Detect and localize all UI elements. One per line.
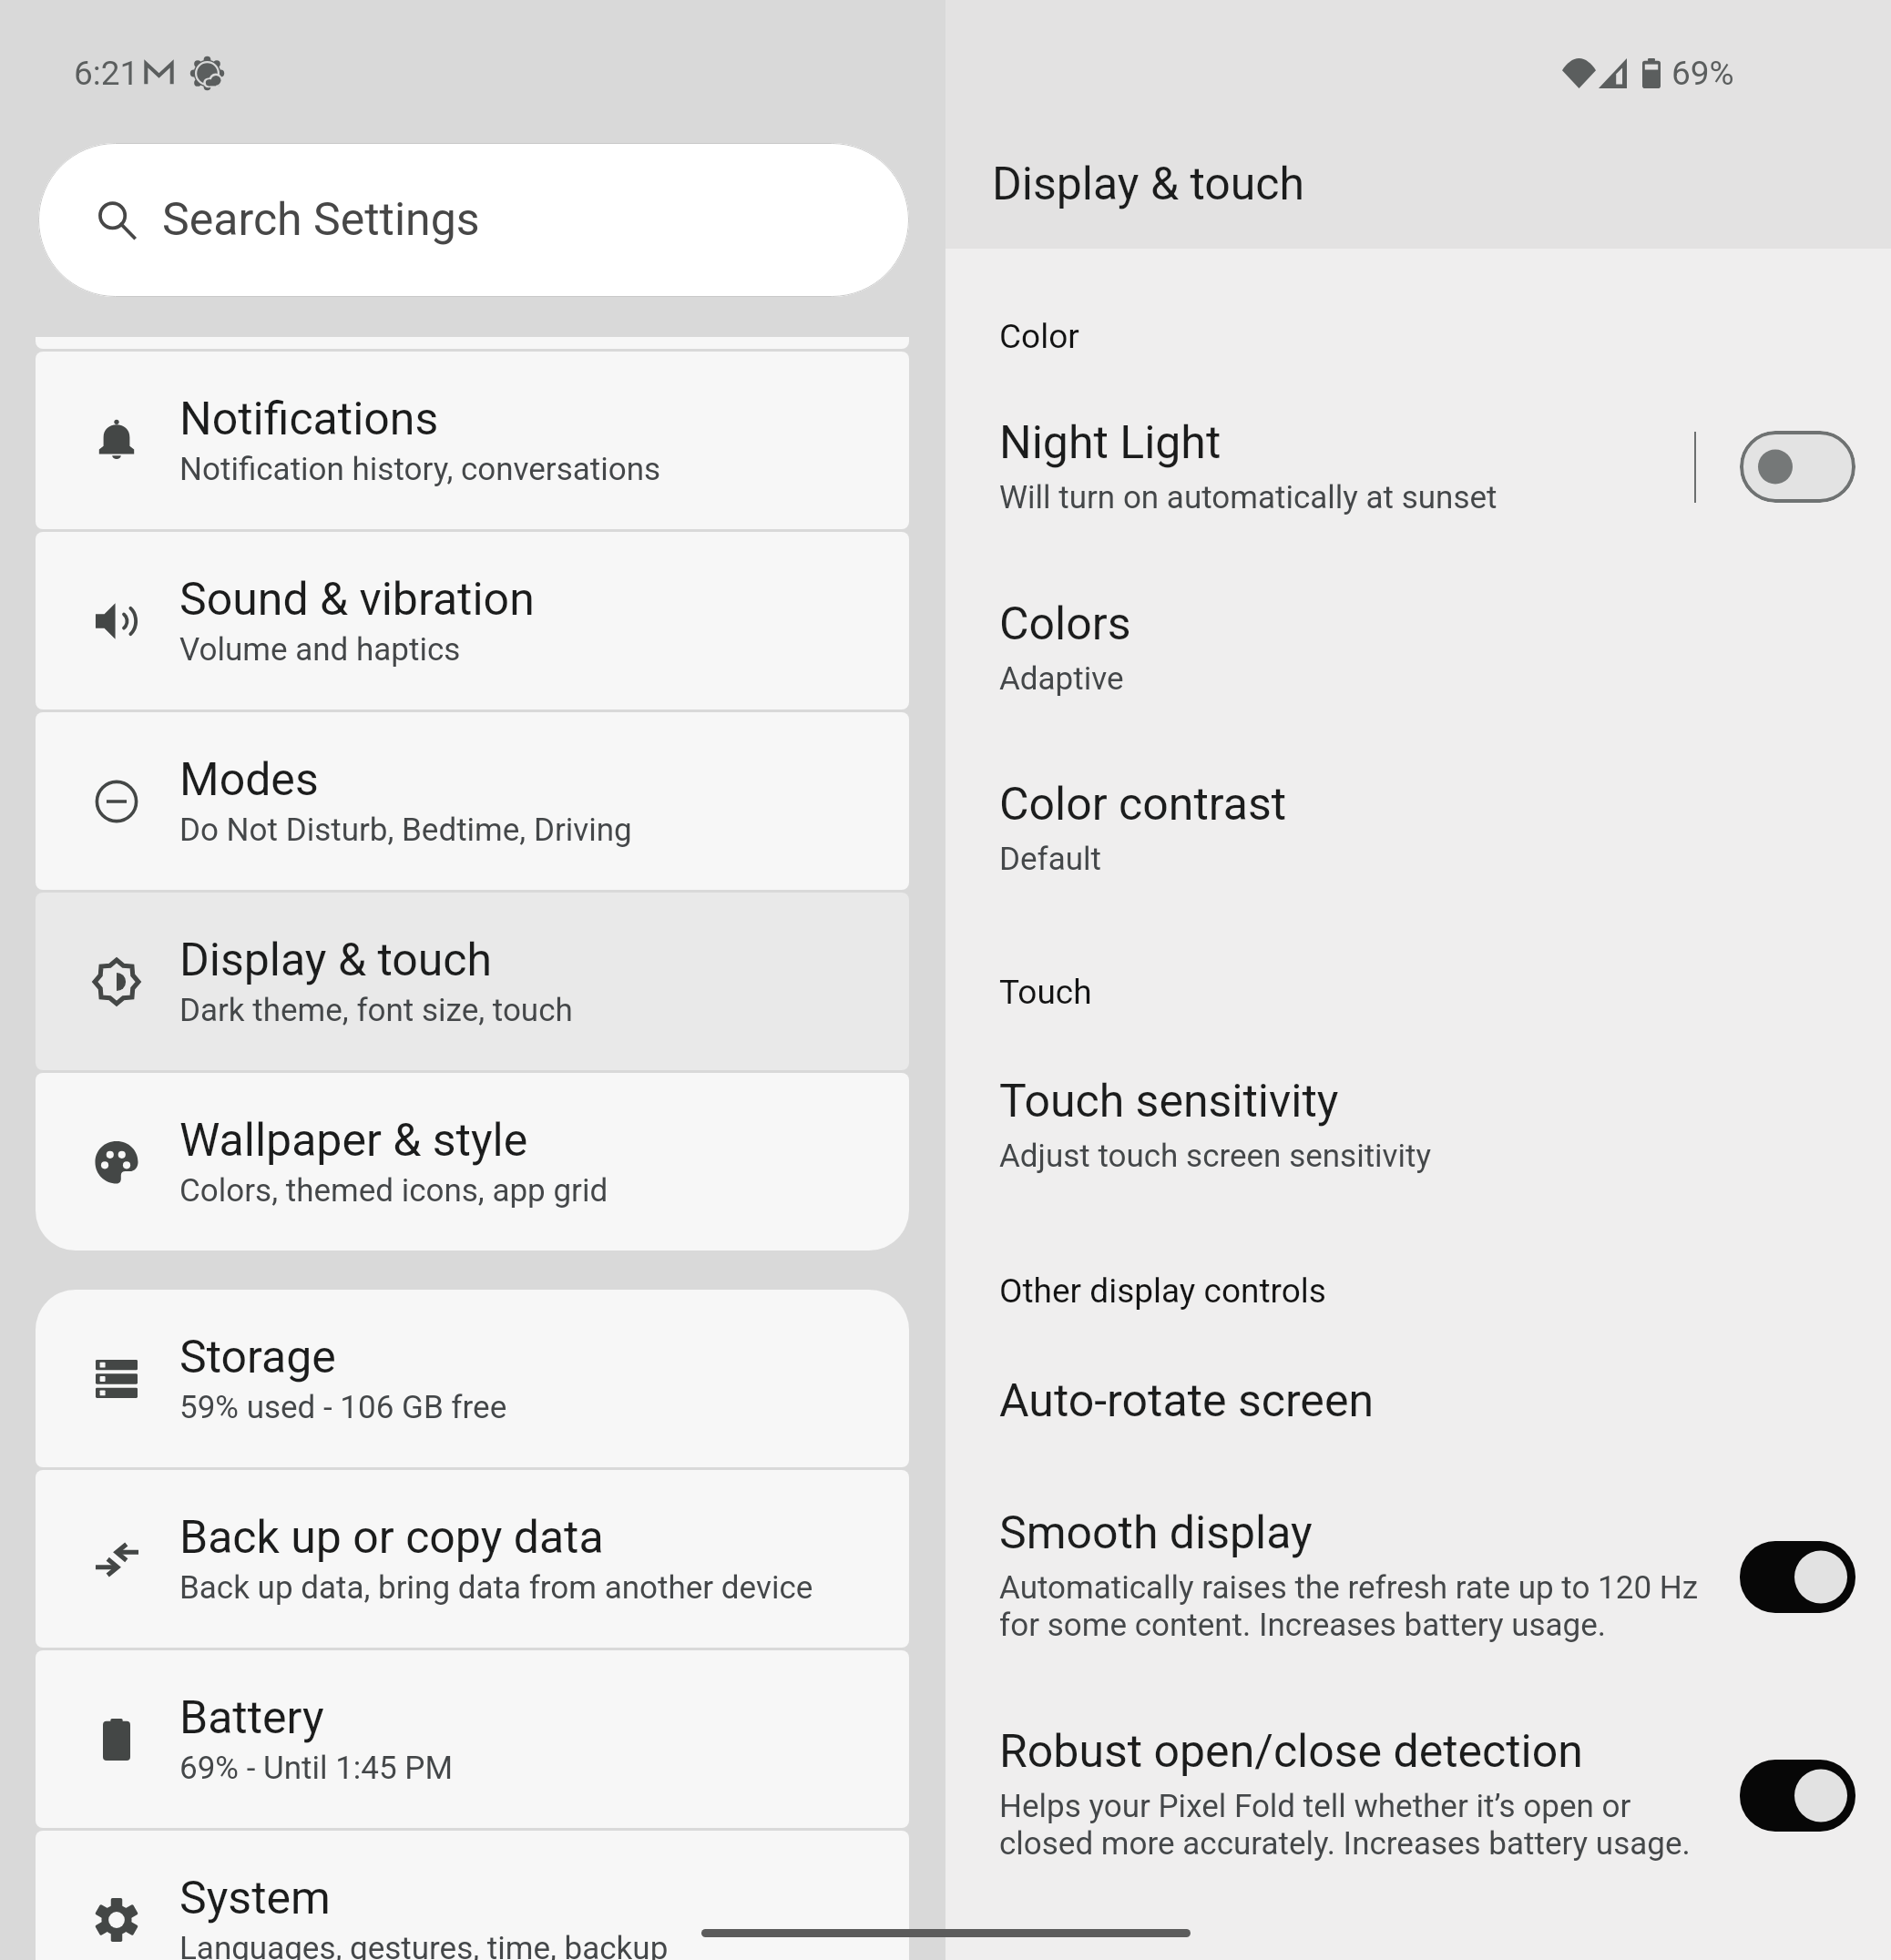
staticText: Wallpaper & style <box>179 1114 528 1168</box>
staticText: Dark theme, font size, touch <box>179 992 573 1029</box>
button[interactable]: Robust open/close detection toggle, on <box>1740 1760 1855 1832</box>
staticText: Robust open/close detection <box>999 1725 1819 1779</box>
staticText: Color contrast <box>999 778 1819 832</box>
button[interactable]: Wallpaper & style <box>36 1073 909 1251</box>
staticText: Do Not Disturb, Bedtime, Driving <box>179 812 632 849</box>
staticText: 6:21 <box>74 54 139 93</box>
button[interactable]: Color contrast <box>945 752 1891 862</box>
staticText: Auto-rotate screen <box>999 1374 1819 1428</box>
button[interactable]: Modes <box>36 712 909 890</box>
staticText: Notifications <box>179 393 439 446</box>
staticText: Will turn on automatically at sunset <box>999 479 1874 516</box>
staticText: Modes <box>179 753 319 807</box>
staticText: Colors <box>999 597 1819 651</box>
staticText: Automatically raises the refresh rate up… <box>999 1569 1874 1644</box>
button[interactable]: Auto-rotate screen <box>945 1349 1891 1458</box>
staticText: Colors, themed icons, app grid <box>179 1172 608 1210</box>
staticText: Search Settings <box>162 193 480 247</box>
button[interactable]: Back up or copy data <box>36 1470 909 1648</box>
staticText: Display & touch <box>179 934 493 987</box>
button[interactable]: Sound & vibration <box>36 532 909 709</box>
staticText: 69% - Until 1:45 PM <box>179 1750 453 1787</box>
staticText: Other display controls <box>999 1271 1326 1311</box>
staticText: Smooth display <box>999 1506 1819 1560</box>
staticText: Storage <box>179 1331 336 1384</box>
button[interactable]: Battery <box>36 1650 909 1828</box>
staticText: 69% <box>1671 54 1734 93</box>
staticText: Battery <box>179 1691 324 1745</box>
staticText: Display & touch <box>992 158 1305 211</box>
staticText: Adaptive <box>999 660 1874 698</box>
button[interactable]: Robust open/close detection <box>945 1700 1891 1845</box>
button[interactable]: Night Light <box>945 391 1891 500</box>
staticText: Notification history, conversations <box>179 451 661 488</box>
staticText: Volume and haptics <box>179 631 461 669</box>
staticText: Touch sensitivity <box>999 1075 1819 1128</box>
button[interactable]: System <box>36 1831 909 1960</box>
button[interactable]: Night Light toggle, off <box>1740 431 1855 503</box>
button[interactable]: Storage <box>36 1290 909 1467</box>
button[interactable]: Search Settings <box>38 143 909 297</box>
button[interactable]: Colors <box>945 572 1891 681</box>
button[interactable]: Display & touch <box>36 893 909 1070</box>
button[interactable]: Smooth display <box>945 1481 1891 1627</box>
staticText: Helps your Pixel Fold tell whether it’s … <box>999 1788 1874 1863</box>
staticText: Color <box>999 317 1079 356</box>
staticText: Languages, gestures, time, backup <box>179 1930 669 1960</box>
staticText: Back up data, bring data from another de… <box>179 1569 813 1607</box>
staticText: Back up or copy data <box>179 1511 604 1565</box>
button[interactable]: Smooth display toggle, on <box>1740 1541 1855 1613</box>
staticText: System <box>179 1872 331 1925</box>
staticText: Touch <box>999 973 1092 1012</box>
staticText: Night Light <box>999 416 1819 470</box>
button[interactable]: Touch sensitivity <box>945 1049 1891 1159</box>
staticText: Adjust touch screen sensitivity <box>999 1138 1874 1175</box>
staticText: Sound & vibration <box>179 573 535 627</box>
staticText: Default <box>999 841 1874 878</box>
button[interactable]: Notifications <box>36 352 909 529</box>
staticText: 59% used - 106 GB free <box>179 1389 507 1426</box>
